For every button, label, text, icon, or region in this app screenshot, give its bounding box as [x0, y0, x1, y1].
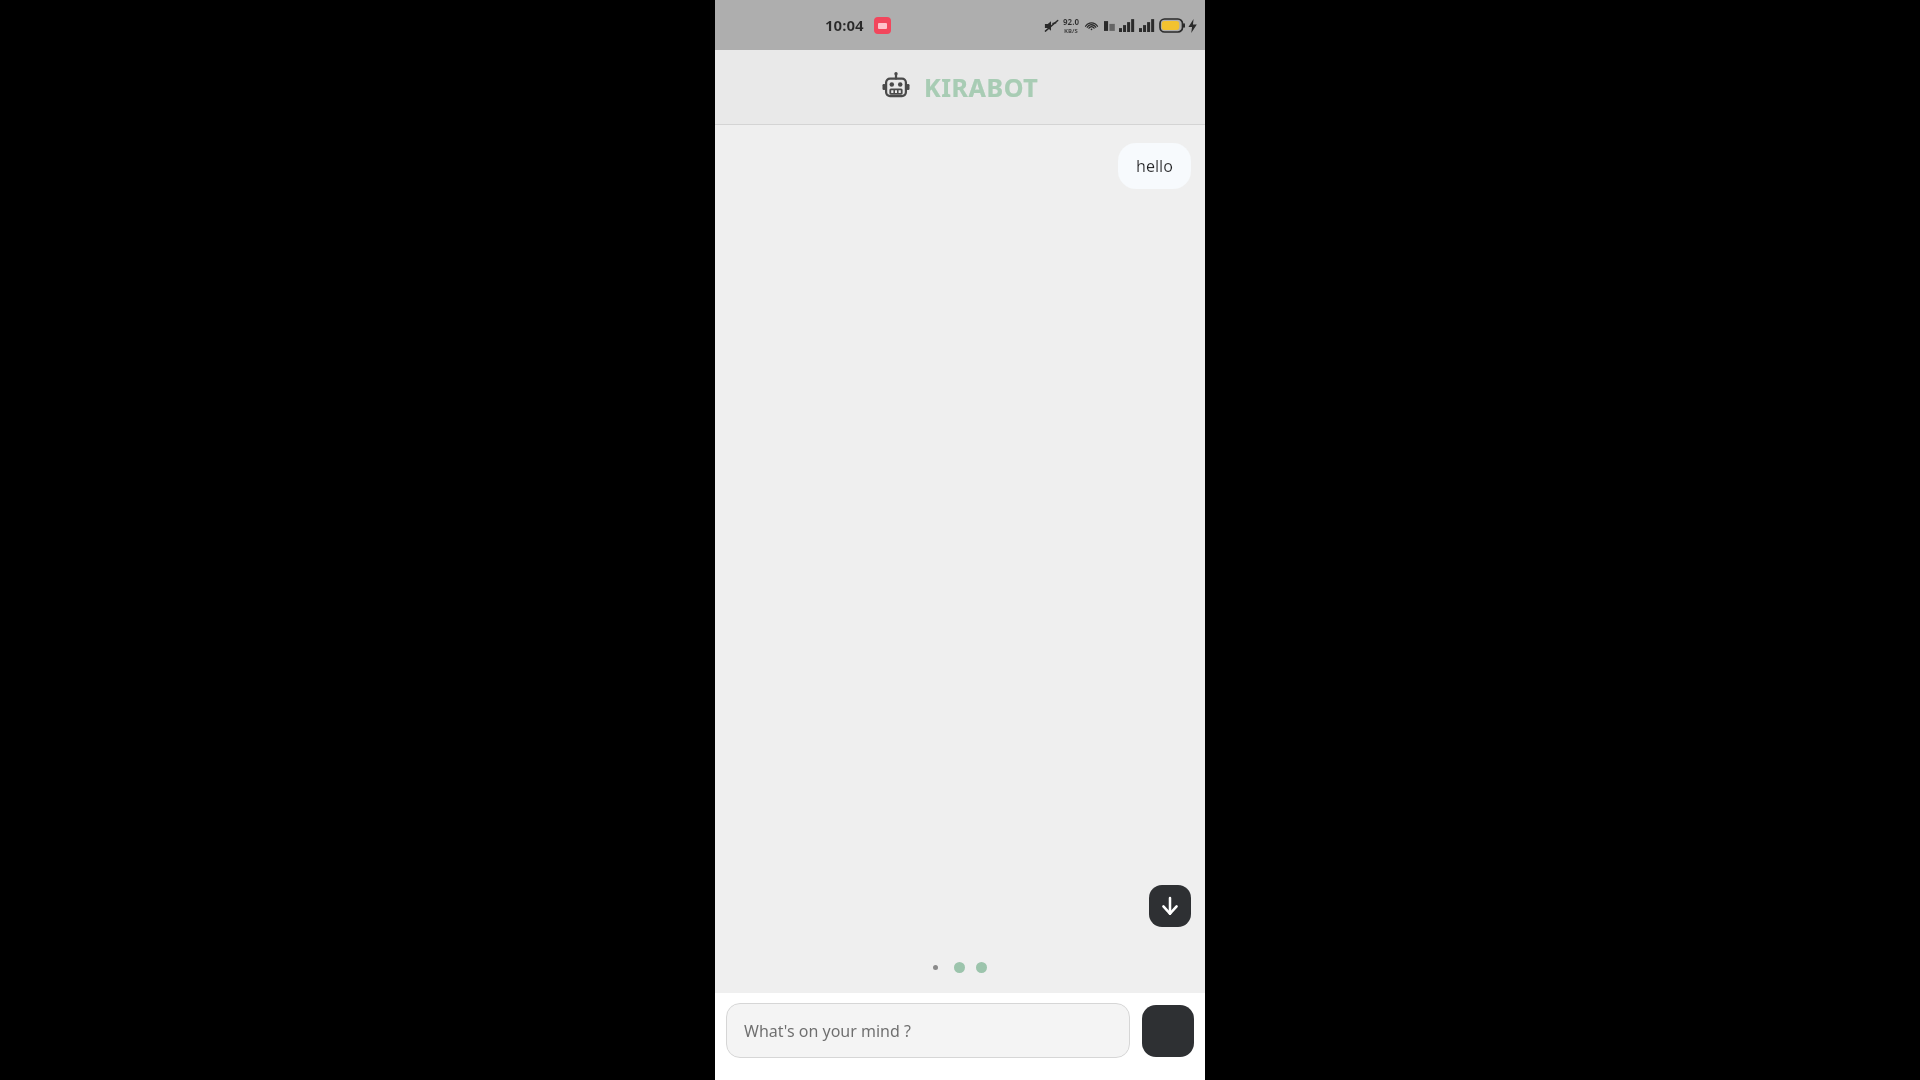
staticText: hello: [1136, 155, 1173, 177]
button[interactable]: Scroll to bottom: [1149, 885, 1191, 927]
button[interactable]: Send message: [1142, 1005, 1194, 1057]
button[interactable]: hello: [1118, 143, 1191, 189]
button[interactable]: What's on your mind ?: [726, 1003, 1130, 1058]
staticText: 10:04: [825, 15, 864, 35]
staticText: What's on your mind ?: [744, 1020, 911, 1042]
staticText: KIRABOT: [924, 70, 1039, 104]
staticText: KB/S: [1064, 27, 1078, 35]
staticText: 92.0: [1063, 16, 1079, 27]
